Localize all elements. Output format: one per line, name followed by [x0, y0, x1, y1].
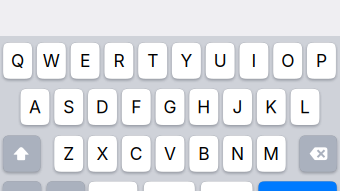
staticText: B [198, 143, 209, 164]
staticText: G [163, 96, 176, 117]
button[interactable]: O [0, 0, 340, 191]
button[interactable]: H [0, 0, 340, 191]
button[interactable]: G [0, 0, 340, 191]
button[interactable]: S [0, 0, 340, 191]
button[interactable]: E [0, 0, 340, 191]
button[interactable]: W [0, 0, 340, 191]
staticText: P [316, 50, 327, 71]
staticText: C [130, 143, 143, 164]
button[interactable]: R [0, 0, 340, 191]
button[interactable]: T [0, 0, 340, 191]
staticText: Y [180, 50, 192, 71]
staticText: K [265, 96, 277, 117]
staticText: D [96, 96, 109, 117]
staticText: L [300, 96, 310, 117]
button[interactable]: M [0, 0, 340, 191]
staticText: W [43, 50, 60, 71]
staticText: T [147, 50, 158, 71]
staticText: I [251, 50, 256, 71]
button[interactable]: Shift [0, 0, 340, 191]
staticText: X [96, 143, 108, 164]
button[interactable]: Z [0, 0, 340, 191]
staticText: J [232, 96, 242, 117]
button[interactable]: P [0, 0, 340, 191]
button[interactable]: U [0, 0, 340, 191]
button[interactable]: 123 [0, 0, 340, 191]
button[interactable]: Period [0, 0, 340, 191]
button[interactable]: A [0, 0, 340, 191]
button[interactable]: N [0, 0, 340, 191]
staticText: M [263, 143, 279, 164]
staticText: V [164, 143, 176, 164]
button[interactable]: D [0, 0, 340, 191]
button[interactable]: J [0, 0, 340, 191]
staticText: Q [11, 50, 24, 71]
staticText: A [29, 96, 41, 117]
staticText: F [131, 96, 141, 117]
staticText: O [281, 50, 294, 71]
staticText: R [113, 50, 124, 71]
staticText: S [63, 96, 74, 117]
button[interactable]: C [0, 0, 340, 191]
button[interactable]: Emoji [0, 0, 340, 191]
button[interactable]: Delete [0, 0, 340, 191]
button[interactable]: Return [0, 0, 340, 191]
button[interactable]: X [0, 0, 340, 191]
button[interactable]: L [0, 0, 340, 191]
staticText: E [80, 50, 90, 71]
button[interactable]: V [0, 0, 340, 191]
button[interactable]: Q [0, 0, 340, 191]
button[interactable]: B [0, 0, 340, 191]
staticText: N [231, 143, 244, 164]
button[interactable]: Space [0, 0, 340, 191]
button[interactable]: K [0, 0, 340, 191]
button[interactable]: Dictation [0, 0, 340, 191]
button[interactable]: F [0, 0, 340, 191]
button[interactable]: Y [0, 0, 340, 191]
button[interactable]: I [0, 0, 340, 191]
staticText: Z [63, 143, 74, 164]
staticText: U [214, 50, 227, 71]
staticText: H [197, 96, 210, 117]
